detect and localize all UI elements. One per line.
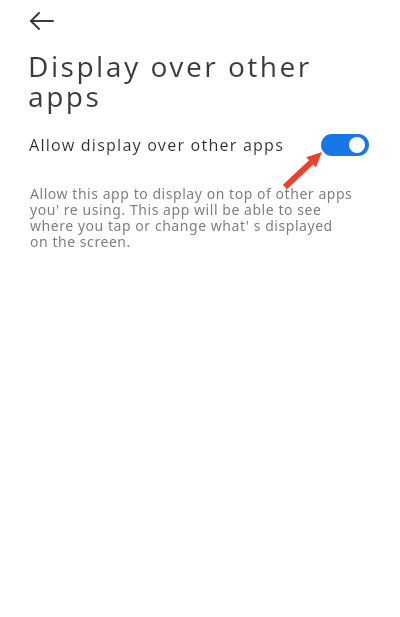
staticText: Allow this app to display on top of othe…: [30, 184, 353, 251]
staticText: Display over other apps: [28, 47, 312, 115]
button[interactable]: [321, 134, 369, 156]
staticText: Allow display over other apps: [29, 134, 285, 156]
button[interactable]: [24, 6, 60, 42]
